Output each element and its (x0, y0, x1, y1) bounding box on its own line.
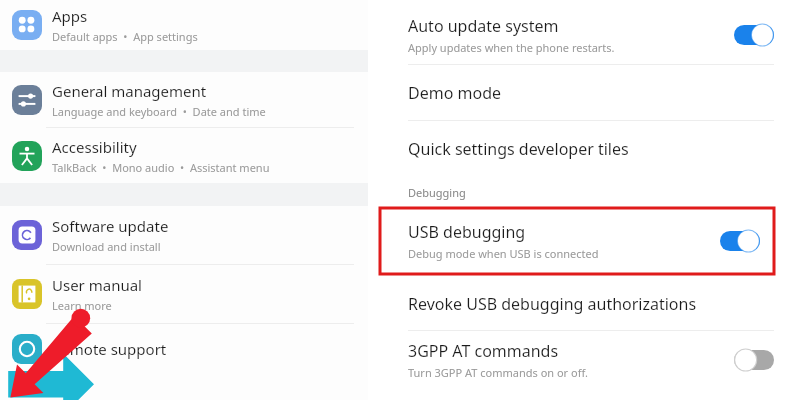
button[interactable]: Remote support (0, 324, 368, 374)
staticText: Accessibility (52, 137, 137, 157)
staticText: Quick settings developer tiles (408, 138, 629, 160)
staticText: Software update (52, 216, 169, 236)
staticText: Language and keyboard • Date and time (52, 104, 266, 119)
button[interactable]: Auto update system (368, 6, 800, 64)
staticText: Apps (52, 6, 88, 26)
staticText: 3GPP AT commands (408, 340, 559, 362)
staticText: Demo mode (408, 82, 502, 104)
staticText: Debugging (408, 185, 466, 200)
staticText: Apply updates when the phone restarts. (408, 40, 615, 55)
staticText: USB debugging (408, 221, 526, 243)
staticText: Learn more (52, 298, 112, 313)
button[interactable]: USB debugging (380, 208, 774, 274)
staticText: TalkBack • Mono audio • Assistant menu (52, 160, 270, 175)
button[interactable]: Apps (0, 0, 368, 50)
staticText: Download and install (52, 239, 161, 254)
button[interactable]: Demo mode (368, 65, 800, 120)
button[interactable]: User manual (0, 265, 368, 323)
button[interactable]: Accessibility (0, 128, 368, 183)
staticText: Debug mode when USB is connected (408, 246, 599, 261)
button[interactable]: Software update (0, 206, 368, 264)
staticText: Remote support (52, 339, 167, 359)
button[interactable]: Quick settings developer tiles (368, 121, 800, 176)
button[interactable]: General management (0, 72, 368, 127)
staticText: Default apps • App settings (52, 29, 198, 44)
staticText: User manual (52, 275, 142, 295)
staticText: Revoke USB debugging authorizations (408, 293, 697, 315)
button[interactable]: 3GPP AT commands (368, 331, 800, 389)
button[interactable]: Revoke USB debugging authorizations (368, 278, 800, 330)
staticText: Turn 3GPP AT commands on or off. (408, 365, 588, 380)
staticText: Auto update system (408, 15, 559, 37)
staticText: General management (52, 81, 207, 101)
